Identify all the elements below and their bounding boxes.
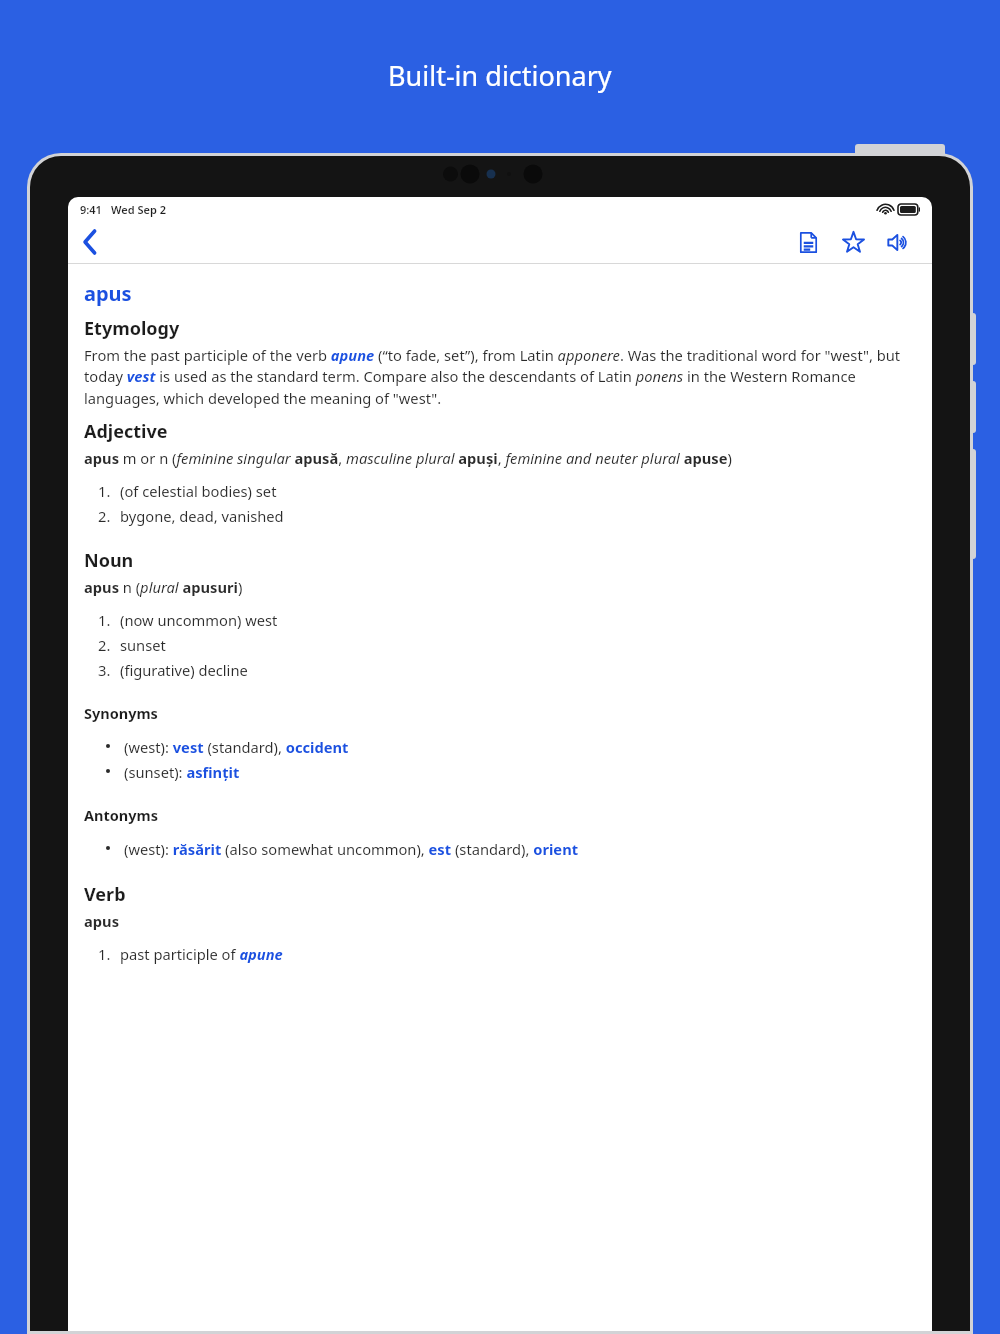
staticText: (west): vest (standard), occident [124,737,349,757]
button[interactable]: (sunset): asfințit [106,762,916,782]
staticText: Etymology [84,316,180,341]
button[interactable]: 2. [98,635,916,655]
button[interactable]: Favorite [830,221,876,263]
staticText: Verb [84,882,126,907]
staticText: apus [84,280,132,307]
staticText: Built-in dictionary [388,57,612,94]
staticText: past participle of apune [120,944,283,964]
staticText: 1. [98,481,111,501]
staticText: (now uncommon) west [120,610,278,630]
staticText: (of celestial bodies) set [120,481,277,501]
staticText: (west): răsărit (also somewhat uncommon)… [124,839,579,859]
staticText: (sunset): asfințit [124,762,240,782]
button[interactable]: 1. [98,610,916,630]
button[interactable]: Article [786,221,830,263]
button[interactable]: Pronounce [876,221,920,263]
staticText: 1. [98,610,111,630]
button[interactable]: 2. [98,506,916,526]
staticText: 2. [98,635,111,655]
staticText: 3. [98,660,111,680]
staticText: Wed Sep 2 [111,202,166,217]
staticText: bygone, dead, vanished [120,506,284,526]
staticText: Antonyms [84,805,158,825]
staticText: Adjective [84,419,168,444]
staticText: From the past participle of the verb apu… [84,345,916,409]
staticText: sunset [120,635,166,655]
button[interactable]: 1. [98,944,916,964]
button[interactable]: 3. [98,660,916,680]
staticText: Synonyms [84,703,158,723]
staticText: 2. [98,506,111,526]
button[interactable]: 1. [98,481,916,501]
button[interactable]: Back [68,221,112,263]
button[interactable]: (west): răsărit (also somewhat uncommon)… [106,839,916,859]
staticText: (figurative) decline [120,660,248,680]
staticText: 1. [98,944,111,964]
staticText: apus n (plural apusuri) [84,577,243,597]
button[interactable]: (west): vest (standard), occident [106,737,916,757]
staticText: apus [84,911,120,931]
staticText: 9:41 [80,202,102,217]
staticText: apus m or n (feminine singular apusă, ma… [84,448,732,468]
staticText: Noun [84,548,134,573]
